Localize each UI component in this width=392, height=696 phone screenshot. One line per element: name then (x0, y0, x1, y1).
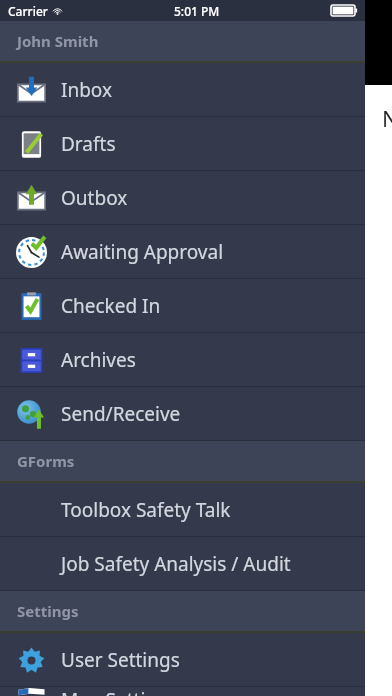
other: Checked In (16, 291, 47, 322)
button[interactable]: Job Safety Analysis / Audit (0, 537, 365, 591)
button[interactable]: Drafts (0, 117, 365, 171)
button[interactable]: Send/Receive (0, 387, 365, 441)
other: Drafts (16, 129, 47, 160)
staticText: Checked In (61, 293, 161, 319)
other: Archives (16, 345, 47, 376)
staticText: 5:01 PM (174, 3, 220, 19)
other: Map Settings (16, 687, 47, 696)
staticText: Toolbox Safety Talk (61, 497, 231, 523)
button[interactable]: Archives (0, 333, 365, 387)
staticText: GForms (17, 451, 75, 471)
staticText: Archives (61, 347, 136, 373)
staticText: Settings (17, 601, 79, 621)
button[interactable]: Toolbox Safety Talk (0, 483, 365, 537)
staticText: N (382, 103, 392, 133)
button[interactable]: Inbox (0, 63, 365, 117)
button[interactable]: User Settings (0, 633, 365, 687)
staticText: Send/Receive (61, 401, 181, 427)
staticText: User Settings (61, 647, 180, 673)
other: Outbox (16, 183, 47, 214)
staticText: Drafts (61, 131, 116, 157)
staticText: Carrier (8, 3, 48, 19)
staticText: Outbox (61, 185, 128, 211)
other: Send/Receive (16, 399, 47, 430)
button[interactable]: Outbox (0, 171, 365, 225)
staticText: Inbox (61, 77, 113, 103)
staticText: Map Settings (61, 687, 178, 696)
button[interactable]: Map Settings (0, 687, 365, 696)
other: User Settings (16, 645, 47, 676)
other: Inbox (16, 75, 47, 106)
staticText: John Smith (17, 31, 99, 51)
other: Awaiting Approval (16, 237, 47, 268)
staticText: Awaiting Approval (61, 239, 224, 265)
staticText: Job Safety Analysis / Audit (61, 551, 291, 577)
button[interactable]: Checked In (0, 279, 365, 333)
button[interactable]: Awaiting Approval (0, 225, 365, 279)
